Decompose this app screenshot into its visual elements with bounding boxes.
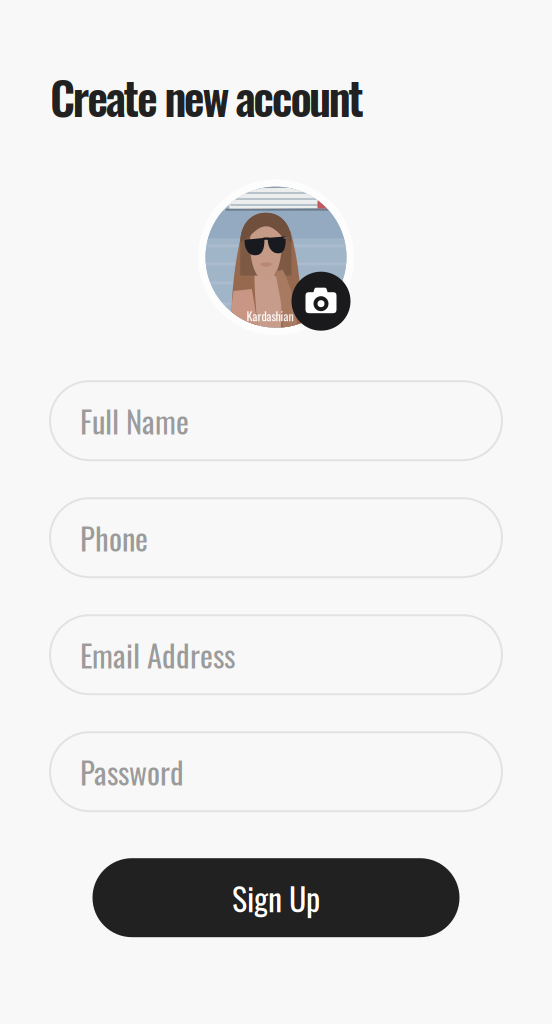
staticText: Create new account — [50, 63, 364, 130]
button[interactable]: Email Address — [50, 615, 502, 694]
button[interactable]: Password — [50, 732, 502, 811]
staticText: Kardashian — [246, 307, 293, 325]
button[interactable]: Change profile photo — [291, 272, 350, 331]
staticText: Full Name — [80, 398, 189, 443]
staticText: Password — [80, 749, 184, 794]
button[interactable]: Sign Up — [92, 858, 459, 937]
staticText: Email Address — [80, 632, 235, 677]
button[interactable]: Full Name — [50, 381, 502, 460]
staticText: Sign Up — [232, 874, 320, 921]
staticText: Phone — [80, 515, 148, 560]
button[interactable]: Phone — [50, 498, 502, 577]
